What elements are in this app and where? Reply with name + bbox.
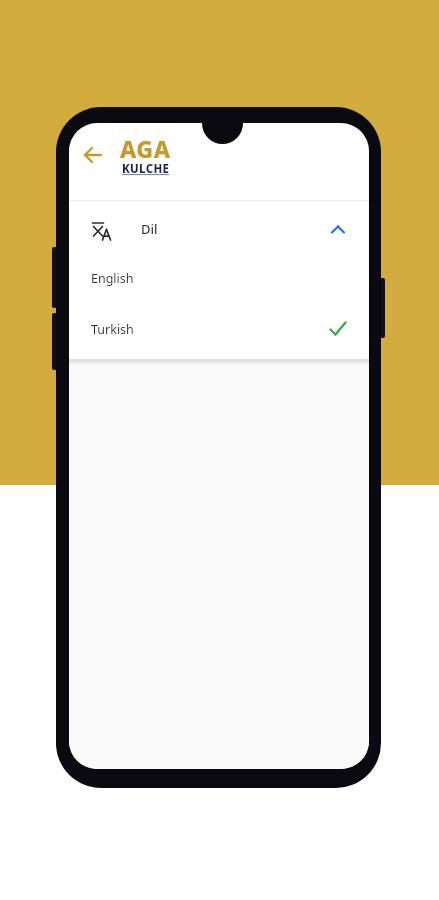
button[interactable]	[73, 135, 113, 175]
staticText: English	[91, 270, 134, 287]
staticText: KULCHE	[122, 161, 170, 177]
button[interactable]: English	[69, 253, 369, 303]
staticText: AGA	[120, 133, 171, 164]
button[interactable]: Dil	[69, 201, 369, 253]
button[interactable]: Turkish	[69, 303, 369, 359]
staticText: Dil	[141, 220, 158, 238]
staticText: Turkish	[91, 321, 134, 338]
